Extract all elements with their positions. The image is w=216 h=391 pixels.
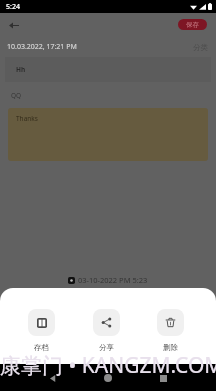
staticText: 存档 (34, 343, 49, 352)
staticText: 康掌门 • KANGZM.COM (0, 351, 216, 380)
staticText: 10.03.2022, 17:21 PM (7, 42, 77, 52)
button[interactable]: Back (44, 369, 62, 387)
staticText: Thanks (16, 114, 38, 123)
button[interactable]: 删除 (151, 308, 190, 353)
staticText: 删除 (163, 343, 178, 352)
button[interactable]: 存档 (22, 308, 61, 353)
button[interactable]: Recents (154, 369, 172, 387)
staticText: 保存 (186, 21, 199, 29)
button[interactable]: Home (99, 369, 117, 387)
button[interactable]: Back (5, 16, 23, 34)
staticText: 分享 (99, 343, 114, 352)
staticText: 5:24 (6, 2, 20, 12)
staticText: Hh (16, 65, 26, 74)
button[interactable]: 保存 (178, 19, 207, 30)
staticText: 03-10-2022 PM 5:23 (78, 275, 148, 285)
button[interactable]: 分类 (185, 41, 216, 54)
staticText: QQ (11, 91, 22, 100)
staticText: 分类 (193, 43, 208, 52)
button[interactable]: 分享 (87, 308, 126, 353)
